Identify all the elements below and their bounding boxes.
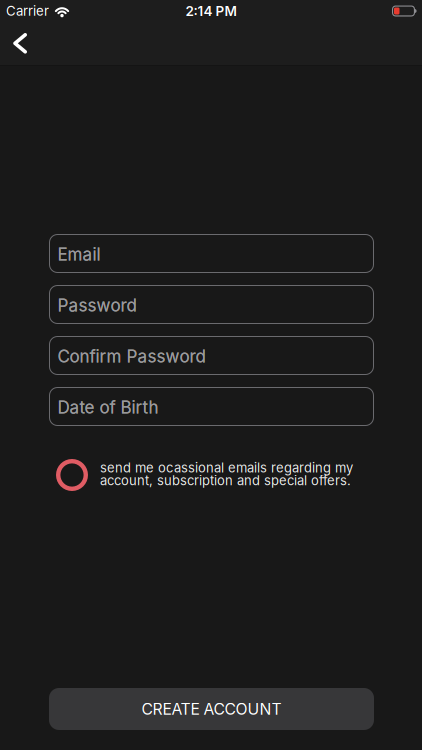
staticText: Carrier (6, 3, 49, 19)
textField[interactable]: Confirm Password (57, 346, 207, 366)
button[interactable]: CREATE ACCOUNT (49, 688, 374, 730)
staticText: Password (57, 295, 136, 315)
staticText: CREATE ACCOUNT (141, 700, 281, 718)
staticText: Confirm Password (57, 346, 205, 366)
staticText: account, subscription and special offers… (100, 473, 351, 488)
staticText: 2:14 PM (185, 3, 236, 19)
button[interactable]: Back (0, 22, 47, 65)
staticText: Email (57, 244, 100, 264)
textField[interactable]: Date of Birth (57, 397, 207, 417)
staticText: Date of Birth (57, 397, 158, 417)
staticText: send me ocassional emails regarding my (100, 460, 353, 475)
staticText: Date of Birth (57, 397, 158, 417)
staticText: Email (57, 244, 100, 264)
textField[interactable]: Email (57, 244, 207, 264)
textField[interactable]: Password (57, 295, 207, 315)
button[interactable]: send me ocassional emails (56, 459, 88, 491)
staticText: Confirm Password (57, 346, 205, 366)
staticText: Password (57, 295, 136, 315)
